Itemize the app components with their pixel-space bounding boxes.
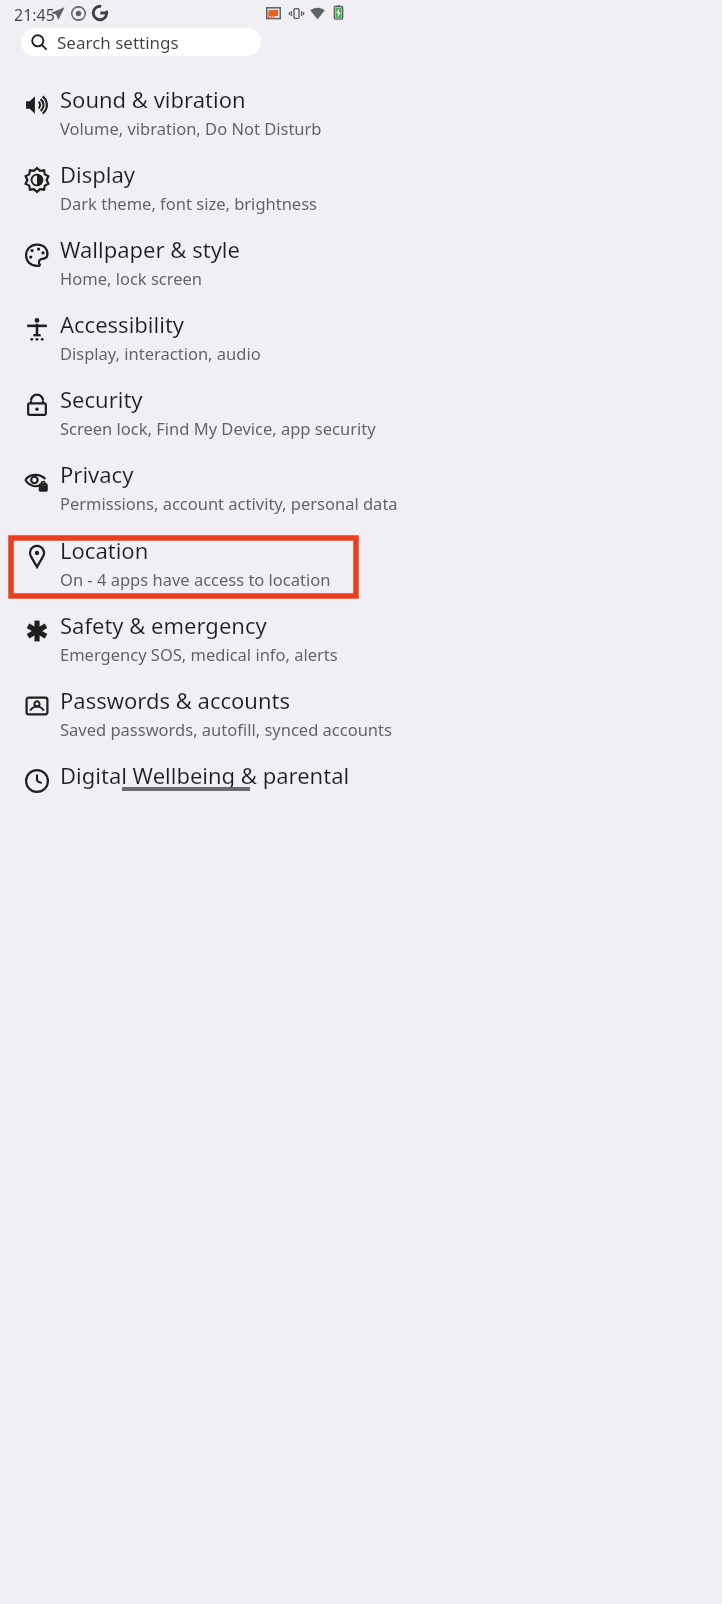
staticText: Privacy: [60, 459, 134, 489]
button[interactable]: Privacy: [0, 453, 722, 515]
staticText: Location: [60, 535, 149, 565]
staticText: Dark theme, font size, brightness: [60, 192, 317, 214]
staticText: On - 4 apps have access to location: [60, 568, 331, 590]
staticText: Passwords & accounts: [60, 685, 291, 715]
staticText: Display: [60, 159, 136, 189]
staticText: Volume, vibration, Do Not Disturb: [60, 117, 322, 139]
staticText: Safety & emergency: [60, 610, 267, 640]
button[interactable]: Digital Wellbeing & parental: [0, 754, 722, 816]
button[interactable]: Security: [0, 378, 722, 440]
button[interactable]: Display: [0, 153, 722, 215]
staticText: Home, lock screen: [60, 267, 203, 289]
staticText: Digital Wellbeing & parental: [60, 760, 350, 790]
button[interactable]: Wallpaper & style: [0, 228, 722, 290]
button[interactable]: Accessibility: [0, 303, 722, 365]
staticText: Sound & vibration: [60, 84, 246, 114]
button[interactable]: Safety & emergency: [0, 604, 722, 666]
staticText: Permissions, account activity, personal …: [60, 492, 398, 514]
staticText: Display, interaction, audio: [60, 342, 261, 364]
staticText: Accessibility: [60, 309, 185, 339]
staticText: Saved passwords, autofill, synced accoun…: [60, 718, 392, 740]
button[interactable]: Passwords & accounts: [0, 679, 722, 741]
staticText: Screen lock, Find My Device, app securit…: [60, 417, 376, 439]
staticText: Search settings: [57, 31, 179, 54]
staticText: Wallpaper & style: [60, 234, 240, 264]
staticText: Security: [60, 384, 143, 414]
staticText: 21:45: [14, 4, 55, 26]
staticText: Emergency SOS, medical info, alerts: [60, 643, 338, 665]
button[interactable]: Sound & vibration: [0, 78, 722, 140]
button[interactable]: Location: [0, 529, 722, 591]
button[interactable]: Search settings: [21, 28, 261, 56]
